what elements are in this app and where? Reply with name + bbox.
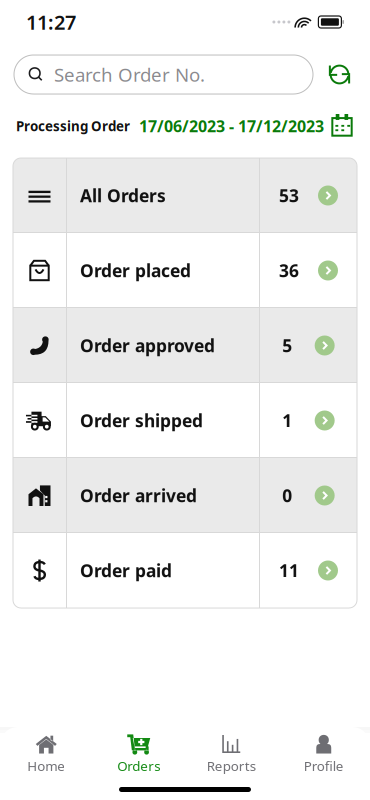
staticText: Order approved bbox=[80, 334, 215, 357]
button[interactable]: Orders bbox=[92, 734, 185, 775]
staticText: 0 bbox=[282, 484, 292, 507]
button[interactable]: Pick date range bbox=[331, 115, 353, 137]
button[interactable]: Order arrived bbox=[13, 458, 357, 533]
staticText: 11 bbox=[279, 559, 299, 582]
button[interactable]: Order paid bbox=[13, 533, 357, 608]
staticText: Processing Order bbox=[16, 117, 130, 135]
staticText: Order paid bbox=[80, 559, 172, 582]
staticText: Profile bbox=[304, 757, 344, 775]
staticText: 36 bbox=[279, 259, 299, 282]
staticText: 5 bbox=[282, 334, 292, 357]
button[interactable]: Order approved bbox=[13, 308, 357, 383]
staticText: 1 bbox=[282, 409, 292, 432]
staticText: Order shipped bbox=[80, 409, 203, 432]
button[interactable]: Search Order No. bbox=[14, 55, 313, 94]
button[interactable]: Refresh bbox=[313, 61, 356, 88]
staticText: 53 bbox=[279, 184, 299, 207]
staticText: Home bbox=[27, 757, 65, 775]
button[interactable]: Home bbox=[0, 734, 92, 775]
staticText: Order arrived bbox=[80, 484, 197, 507]
staticText: Search Order No. bbox=[54, 62, 205, 87]
staticText: Orders bbox=[117, 757, 160, 775]
button[interactable]: Order placed bbox=[13, 233, 357, 308]
staticText: All Orders bbox=[80, 184, 166, 207]
staticText: Order placed bbox=[80, 259, 191, 282]
button[interactable]: All Orders bbox=[13, 158, 357, 233]
button[interactable]: Order shipped bbox=[13, 383, 357, 458]
staticText: 17/06/2023 - 17/12/2023 bbox=[139, 115, 324, 137]
staticText: Reports bbox=[207, 757, 256, 775]
button[interactable]: Reports bbox=[185, 734, 277, 775]
staticText: 11:27 bbox=[26, 9, 76, 35]
button[interactable]: Profile bbox=[277, 734, 370, 775]
